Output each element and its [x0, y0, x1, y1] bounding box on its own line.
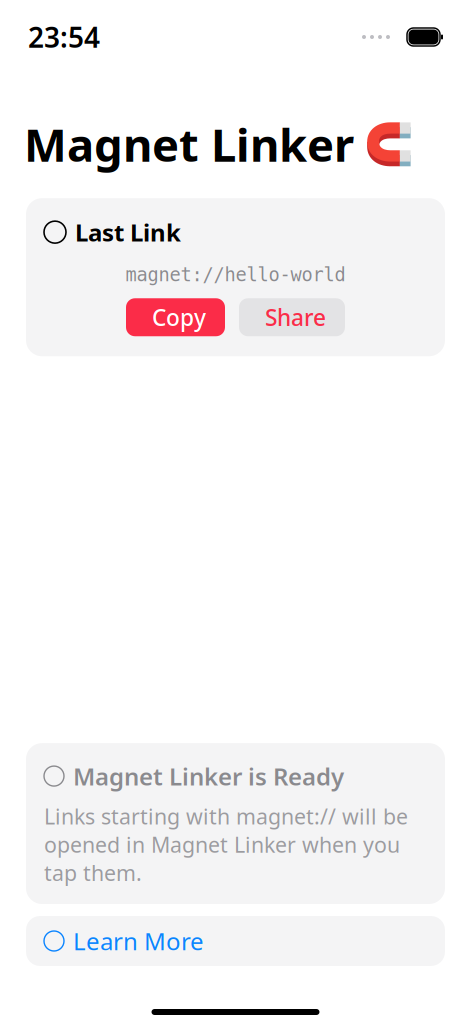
- staticText: Learn More: [73, 925, 204, 957]
- button[interactable]: 􀈂: [239, 298, 345, 336]
- staticText: Magnet Linker is Ready: [73, 760, 344, 792]
- button[interactable]: 􀅴: [26, 916, 445, 966]
- staticText: Magnet Linker: [24, 114, 354, 174]
- staticText: 🧲: [364, 121, 414, 167]
- button[interactable]: 􀐅: [126, 298, 225, 336]
- staticText: magnet://hello-world: [125, 264, 345, 285]
- staticText: Copy: [152, 302, 206, 332]
- staticText: Share: [265, 302, 326, 332]
- staticText: Links starting with magnet:// will be op…: [44, 802, 408, 887]
- staticText: Last Link: [75, 216, 181, 248]
- staticText: 23:54: [28, 18, 100, 56]
